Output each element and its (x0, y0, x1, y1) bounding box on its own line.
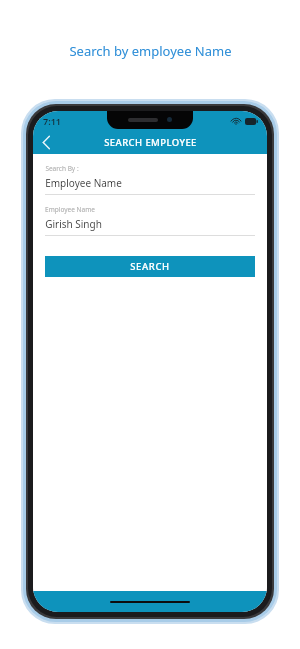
staticText: Girish Singh (45, 217, 102, 231)
button[interactable]: Employee Name (45, 176, 255, 190)
staticText: Employee Name (45, 205, 95, 214)
button[interactable]: SEARCH (45, 256, 255, 277)
staticText: Search by employee Name (69, 42, 232, 60)
staticText: Employee Name (45, 176, 122, 190)
staticText: SEARCH EMPLOYEE (104, 136, 197, 149)
staticText: 7:11 (43, 115, 61, 127)
button[interactable]: Back (33, 131, 59, 154)
staticText: Search By : (45, 164, 79, 173)
staticText: SEARCH (130, 260, 170, 273)
button[interactable]: Girish Singh (45, 217, 255, 231)
